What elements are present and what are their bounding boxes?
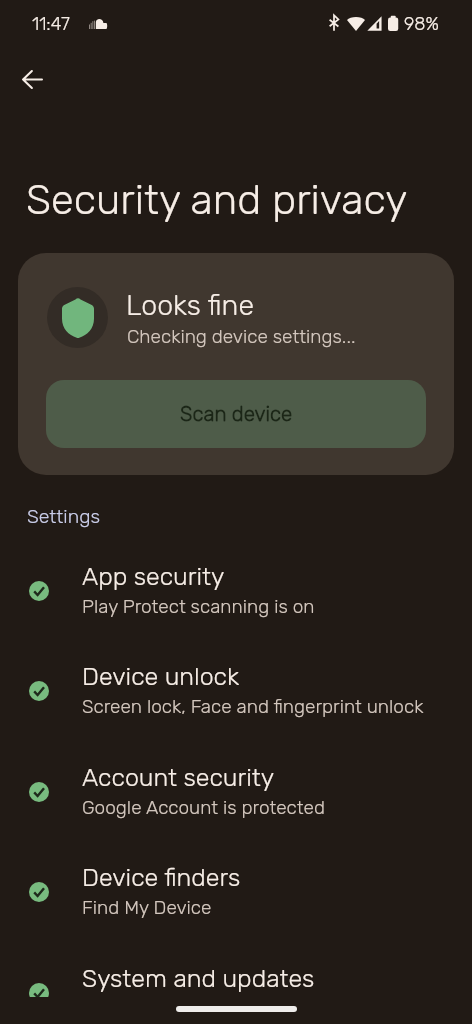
staticText: Checking device settings... <box>127 325 356 348</box>
staticText: App security <box>82 562 225 592</box>
staticText: Looks fine <box>126 288 254 322</box>
staticText: Device finders <box>82 863 241 893</box>
staticText: Google Account is protected <box>82 796 472 819</box>
staticText: Play Protect scanning is on <box>82 595 472 618</box>
staticText: 98% <box>404 13 439 34</box>
button[interactable]: Scan device <box>46 380 426 448</box>
staticText: System and updates <box>82 964 315 994</box>
button[interactable]: System and updates <box>0 944 472 997</box>
staticText: Find My Device <box>82 896 472 919</box>
staticText: Security and privacy <box>26 175 408 224</box>
staticText: Scan device <box>180 402 293 426</box>
button[interactable]: Device unlock <box>0 642 472 730</box>
staticText: Settings <box>27 505 101 528</box>
button[interactable]: Back <box>8 55 56 103</box>
button[interactable]: App security <box>0 542 472 630</box>
staticText: Device unlock <box>82 662 240 692</box>
button[interactable]: Account security <box>0 743 472 831</box>
staticText: Screen lock, Face and fingerprint unlock <box>82 695 472 718</box>
button[interactable]: Device finders <box>0 843 472 931</box>
staticText: 11:47 <box>32 13 70 34</box>
staticText: Account security <box>82 763 274 793</box>
